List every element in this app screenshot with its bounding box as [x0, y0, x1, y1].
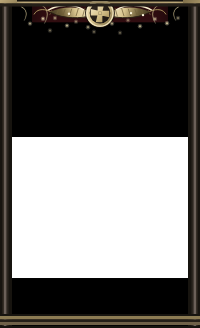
other: Emblem	[0, 0, 200, 328]
button[interactable]: Emblem	[0, 0, 200, 328]
